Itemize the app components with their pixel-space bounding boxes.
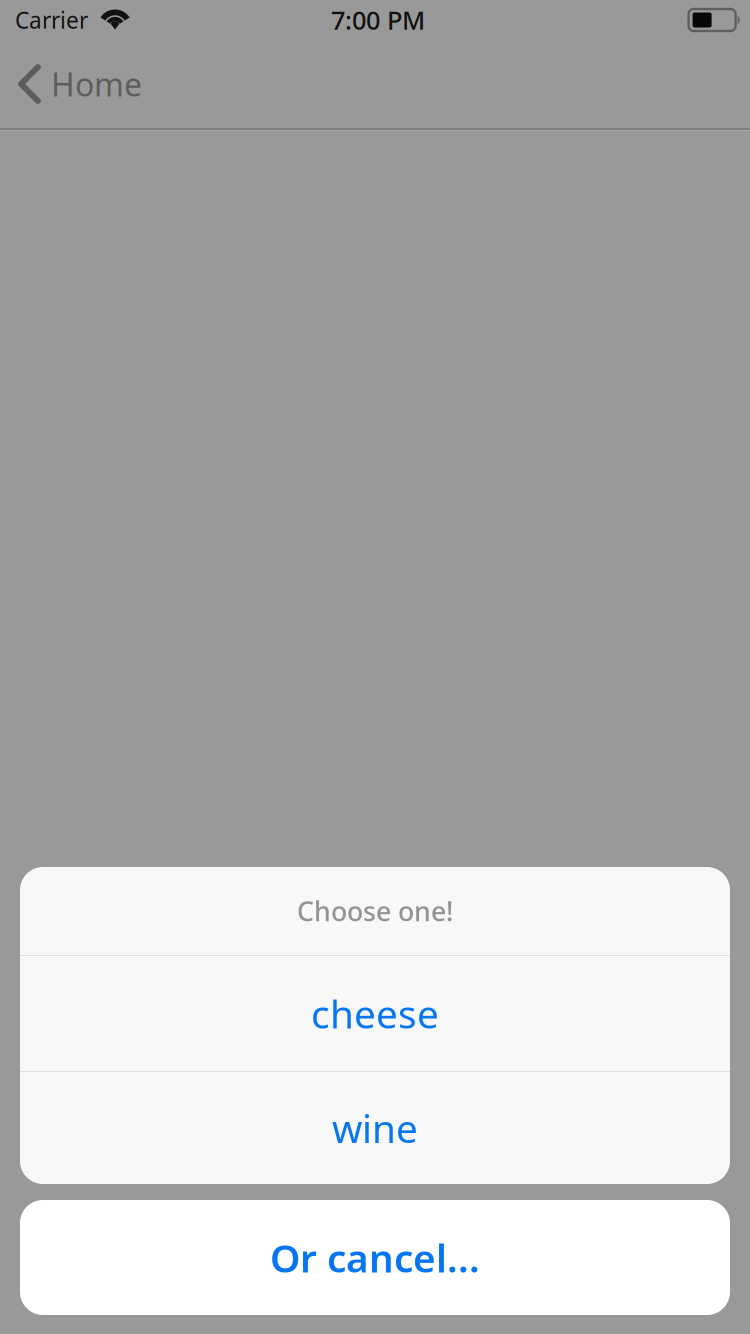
staticText: Home (51, 63, 142, 105)
staticText: 7:00 PM (331, 3, 425, 37)
button[interactable]: cheese (20, 956, 730, 1071)
button[interactable]: wine (20, 1072, 730, 1184)
staticText: Or cancel... (270, 1232, 480, 1283)
button[interactable]: Home (0, 40, 158, 128)
button[interactable]: Or cancel... (20, 1200, 730, 1315)
staticText: Carrier (15, 5, 88, 35)
staticText: Choose one! (297, 893, 453, 929)
staticText: cheese (311, 988, 439, 1039)
staticText: wine (332, 1102, 418, 1154)
